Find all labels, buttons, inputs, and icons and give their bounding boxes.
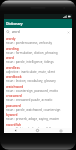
staticText: word <box>6 56 14 60</box>
staticText: noun : ponderousness, verbosity <box>6 41 53 45</box>
staticText: noun : Xiphias gladius, broadbill <box>6 127 51 128</box>
button[interactable]: byword <box>4 112 72 122</box>
staticText: noun : crossword puzzle, acrostic <box>6 98 53 102</box>
button[interactable]: password <box>4 103 72 112</box>
staticText: word <box>12 30 20 34</box>
staticText: adjective : inarticulate, mute, silent <box>6 70 56 74</box>
staticText: noun : countersign, password, motto <box>6 89 58 93</box>
staticText: wordy <box>6 37 16 41</box>
staticText: wording <box>6 47 19 51</box>
button[interactable]: swordfish <box>4 122 72 128</box>
button[interactable]: wording <box>4 46 72 55</box>
button[interactable]: Recents <box>49 128 72 133</box>
staticText: noun : lexicon, vocabulary, glossary <box>6 79 56 83</box>
button[interactable]: watchword <box>4 84 72 93</box>
staticText: noun : formulation, diction, phrasing <box>6 51 58 55</box>
button[interactable]: Home <box>26 128 49 133</box>
button[interactable]: wordy <box>4 36 72 46</box>
other: Search <box>6 30 10 34</box>
other: Clear <box>67 31 70 34</box>
button[interactable]: crossword <box>4 93 72 103</box>
button[interactable]: Search <box>4 28 72 36</box>
staticText: noun : proverb, adage, saying, maxim <box>6 117 60 121</box>
staticText: Dictionary <box>6 21 23 26</box>
button[interactable]: Dictionary <box>4 19 72 28</box>
staticText: swordfish <box>6 123 22 127</box>
button[interactable]: wordless <box>4 65 72 74</box>
staticText: noun : parole, watchword, countersign <box>6 108 61 112</box>
staticText: wordbook <box>6 75 22 79</box>
button[interactable]: wordbook <box>4 74 72 84</box>
staticText: wordless <box>6 66 20 70</box>
staticText: password <box>6 104 21 108</box>
staticText: byword <box>6 113 18 117</box>
button[interactable]: word <box>4 55 72 65</box>
staticText: noun : parole, intelligence, tidings <box>6 60 54 64</box>
button[interactable]: Back <box>4 128 26 133</box>
staticText: crossword <box>6 94 22 98</box>
staticText: watchword <box>6 85 24 89</box>
